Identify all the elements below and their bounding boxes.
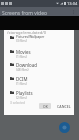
button[interactable]: OK	[39, 103, 51, 109]
button[interactable]: Download	[4, 59, 74, 73]
staticText: Screens from video	[2, 10, 47, 17]
staticText: Pictures/Wallpaper	[16, 35, 45, 39]
staticText: 13:04	[67, 1, 78, 6]
button[interactable]: CANCEL	[56, 102, 72, 110]
button[interactable]: Playlists	[4, 87, 74, 101]
button[interactable]: Pictures/Wallpaper	[4, 32, 74, 46]
staticText: Playlists	[16, 90, 33, 96]
staticText: (48 files)	[16, 68, 29, 72]
staticText: (1 files)	[16, 55, 27, 59]
staticText: Movies	[16, 49, 31, 55]
button[interactable]: DCIM	[4, 73, 74, 87]
staticText: (1 files)	[16, 82, 27, 86]
button[interactable]: Movies	[4, 46, 74, 60]
staticText: (2 files)	[16, 96, 27, 100]
staticText: /storage/emulated/0	[7, 30, 46, 35]
staticText: DCIM	[16, 76, 28, 82]
staticText: (3 files)	[16, 39, 27, 43]
staticText: OK	[43, 104, 48, 109]
staticText: 3 selected	[10, 101, 26, 105]
staticText: CANCEL	[57, 104, 71, 109]
button[interactable]: Capture frame	[59, 122, 70, 133]
staticText: Download	[16, 62, 37, 68]
